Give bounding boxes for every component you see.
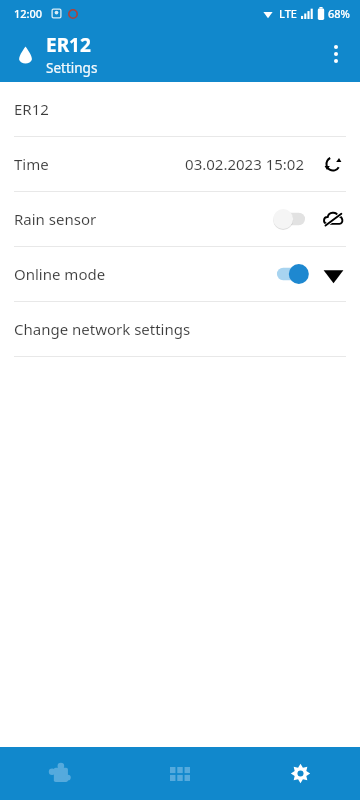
staticText: Rain sensor [14, 209, 97, 229]
staticText: ER12 [14, 99, 49, 119]
button[interactable]: Plugins [0, 747, 120, 800]
button[interactable]: Settings [240, 747, 360, 800]
staticText: Settings [46, 59, 98, 77]
button[interactable]: Rain sensor [0, 192, 360, 246]
button[interactable]: Rain sensor off [270, 204, 312, 234]
button[interactable]: Online mode [0, 247, 360, 301]
button[interactable]: More options [312, 30, 360, 78]
staticText: Online mode [14, 264, 106, 284]
staticText: Change network settings [14, 319, 191, 339]
staticText: 68% [328, 6, 350, 21]
button[interactable]: Online mode on [270, 259, 312, 289]
button[interactable]: Sync time [318, 149, 348, 179]
staticText: LTE [279, 6, 297, 21]
staticText: 03.02.2023 15:02 [185, 154, 304, 174]
button[interactable]: Change network settings [0, 302, 360, 356]
staticText: Time [14, 154, 49, 174]
staticText: 12:00 [14, 6, 43, 21]
staticText: ER12 [46, 32, 91, 58]
button[interactable]: Dashboard [120, 747, 240, 800]
button[interactable]: Time [0, 137, 360, 191]
button[interactable]: ER12 [0, 82, 360, 136]
